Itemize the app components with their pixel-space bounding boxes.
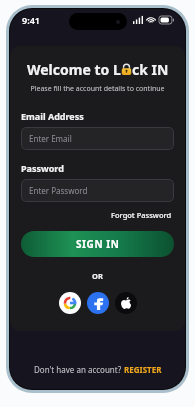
staticText: Welcome to L <box>27 60 121 79</box>
staticText: REGISTER <box>124 364 162 375</box>
staticText: Please fill the account details to conti… <box>21 84 174 94</box>
button[interactable]: Enter Password <box>21 179 174 202</box>
staticText: Email Address <box>21 110 84 122</box>
staticText: SIGN IN <box>76 237 120 251</box>
staticText: ck IN <box>132 60 169 79</box>
staticText: Enter Password <box>29 185 88 196</box>
staticText: Don't have an account? <box>34 364 124 375</box>
button[interactable]: Don't have an account? <box>10 364 185 375</box>
staticText: OR <box>21 271 174 281</box>
staticText: 9:41 <box>22 14 40 26</box>
button[interactable]: SIGN IN <box>21 231 174 257</box>
button[interactable]: Sign in with Google <box>59 292 81 314</box>
staticText: Enter Email <box>29 133 72 144</box>
button[interactable]: Sign in with Facebook <box>87 292 109 314</box>
staticText: Password <box>21 162 64 174</box>
button[interactable]: Enter Email <box>21 127 174 150</box>
button[interactable]: Sign in with Apple <box>115 292 137 314</box>
button[interactable]: Forgot Password <box>109 208 174 222</box>
